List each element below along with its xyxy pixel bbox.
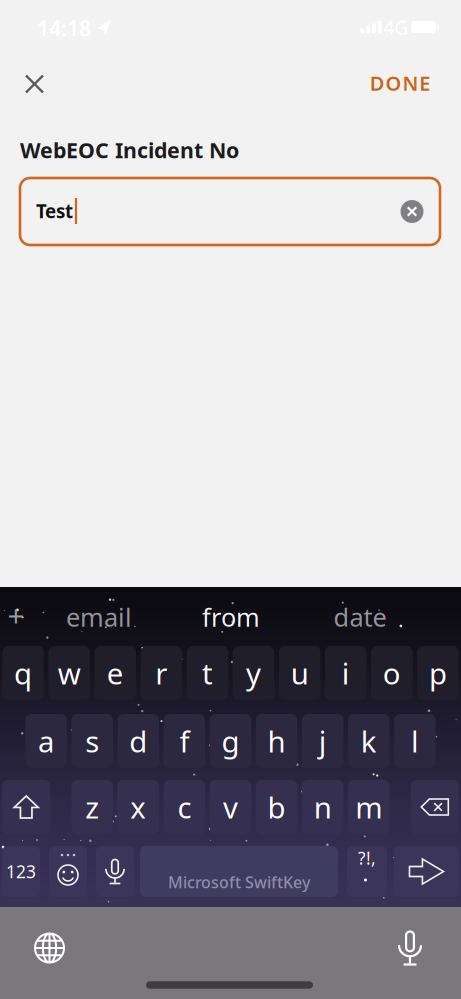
staticText: 123 bbox=[6, 860, 36, 883]
staticText: 4G bbox=[383, 14, 409, 40]
button[interactable]: f bbox=[164, 714, 205, 768]
button[interactable]: date bbox=[333, 600, 386, 634]
button[interactable]: w bbox=[48, 646, 90, 700]
staticText: b bbox=[268, 787, 286, 826]
staticText: g bbox=[221, 721, 239, 760]
staticText: v bbox=[223, 787, 238, 826]
button[interactable]: o bbox=[371, 646, 413, 700]
button[interactable]: i bbox=[325, 646, 366, 700]
staticText: WebEOC Incident No bbox=[20, 136, 239, 164]
staticText: x bbox=[130, 787, 146, 826]
staticText: from bbox=[202, 600, 260, 634]
button[interactable]: 123 bbox=[2, 846, 40, 897]
button[interactable]: m bbox=[348, 780, 390, 834]
staticText: j bbox=[319, 721, 327, 760]
staticText: n bbox=[314, 787, 332, 826]
staticText: p bbox=[429, 653, 447, 692]
button[interactable]: from bbox=[202, 600, 260, 634]
button[interactable]: v bbox=[210, 780, 251, 834]
staticText: r bbox=[155, 653, 167, 692]
button[interactable]: l bbox=[394, 714, 436, 768]
button[interactable]: g bbox=[210, 714, 251, 768]
button[interactable]: x bbox=[118, 780, 159, 834]
button[interactable]: e bbox=[94, 646, 136, 700]
button[interactable] bbox=[400, 200, 423, 223]
staticText: u bbox=[291, 653, 309, 692]
button[interactable] bbox=[25, 923, 74, 972]
staticText: t bbox=[202, 653, 213, 692]
button[interactable]: j bbox=[302, 714, 343, 768]
button[interactable]: a bbox=[25, 714, 67, 768]
staticText: q bbox=[14, 653, 32, 692]
button[interactable] bbox=[49, 846, 87, 897]
staticText: ?!, bbox=[358, 846, 376, 869]
button[interactable]: + bbox=[7, 595, 24, 634]
button[interactable]: d bbox=[118, 714, 159, 768]
button[interactable]: n bbox=[302, 780, 343, 834]
button[interactable]: c bbox=[164, 780, 205, 834]
staticText: h bbox=[268, 721, 286, 760]
button[interactable]: h bbox=[256, 714, 297, 768]
button[interactable]: r bbox=[141, 646, 182, 700]
button[interactable]: z bbox=[71, 780, 113, 834]
button[interactable]: q bbox=[2, 646, 44, 700]
staticText: f bbox=[179, 721, 189, 760]
button[interactable]: k bbox=[348, 714, 390, 768]
staticText: DONE bbox=[370, 70, 430, 96]
button[interactable] bbox=[18, 67, 51, 100]
button[interactable] bbox=[20, 178, 440, 245]
staticText: m bbox=[355, 787, 382, 826]
button[interactable]: b bbox=[256, 780, 297, 834]
button[interactable] bbox=[96, 846, 134, 897]
button[interactable] bbox=[394, 846, 459, 897]
staticText: Test bbox=[36, 199, 73, 223]
staticText: k bbox=[361, 721, 377, 760]
button[interactable]: ?!, bbox=[347, 846, 387, 897]
button[interactable]: Microsoft SwiftKey bbox=[140, 846, 338, 897]
button[interactable] bbox=[388, 921, 431, 974]
staticText: a bbox=[38, 721, 54, 760]
staticText: email bbox=[66, 600, 132, 634]
staticText: Microsoft SwiftKey bbox=[168, 871, 310, 893]
staticText: date bbox=[333, 600, 386, 634]
staticText: w bbox=[58, 653, 81, 692]
button[interactable] bbox=[411, 780, 459, 834]
button[interactable]: s bbox=[71, 714, 113, 768]
staticText: d bbox=[129, 721, 147, 760]
staticText: e bbox=[107, 653, 124, 692]
button[interactable] bbox=[2, 780, 50, 834]
button[interactable]: p bbox=[417, 646, 459, 700]
button[interactable]: t bbox=[187, 646, 228, 700]
staticText: o bbox=[383, 653, 401, 692]
staticText: s bbox=[85, 721, 99, 760]
button[interactable]: email bbox=[66, 600, 132, 634]
staticText: + bbox=[7, 595, 24, 634]
staticText: y bbox=[246, 653, 261, 692]
staticText: l bbox=[411, 721, 419, 760]
staticText: z bbox=[85, 787, 99, 826]
button[interactable]: y bbox=[233, 646, 274, 700]
staticText: c bbox=[177, 787, 191, 826]
staticText: 14:18 bbox=[37, 14, 91, 42]
button[interactable]: DONE bbox=[364, 64, 436, 102]
button[interactable]: u bbox=[279, 646, 320, 700]
staticText: i bbox=[342, 653, 350, 692]
